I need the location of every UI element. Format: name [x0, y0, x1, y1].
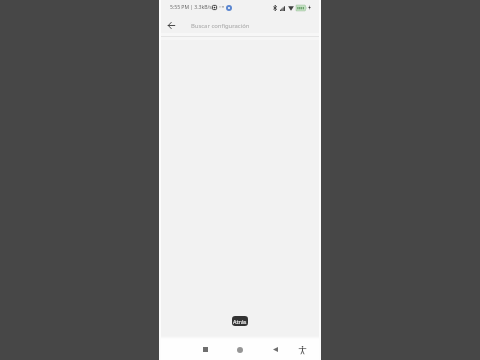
staticText: 5:55 PM | 3.3kB/s: [170, 4, 212, 11]
button[interactable]: Accessibility: [290, 339, 314, 360]
button[interactable]: Home: [228, 339, 252, 360]
staticText: Buscar configuración: [191, 22, 250, 30]
button[interactable]: Atrás: [232, 316, 248, 326]
button[interactable]: Back: [263, 339, 287, 360]
staticText: Atrás: [233, 318, 247, 325]
button[interactable]: Back: [161, 15, 182, 36]
button[interactable]: Recents: [193, 339, 217, 360]
